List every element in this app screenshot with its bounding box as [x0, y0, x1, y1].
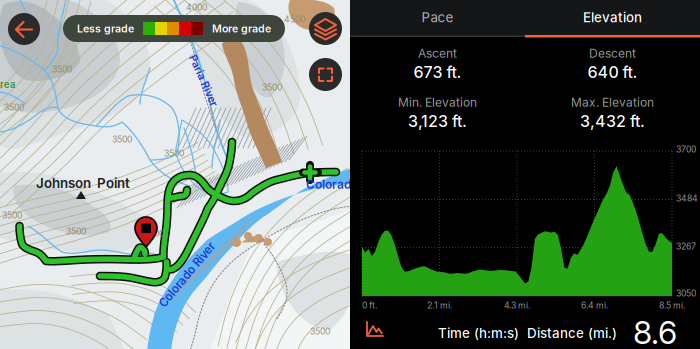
- staticText: 3,123 ft.: [408, 111, 467, 131]
- staticText: rea: [0, 79, 15, 90]
- staticText: Ascent: [418, 46, 457, 60]
- staticText: Less grade: [77, 22, 134, 35]
- staticText: 640 ft.: [587, 62, 637, 82]
- staticText: 3500: [52, 64, 72, 74]
- staticText: 2.1 mi.: [427, 300, 452, 310]
- staticText: 673 ft.: [413, 62, 461, 82]
- staticText: Time (h:m:s): [438, 325, 519, 341]
- button[interactable]: Elevation: [525, 0, 700, 35]
- staticText: Max. Elevation: [571, 95, 654, 109]
- staticText: 3500: [4, 102, 24, 112]
- staticText: Descent: [589, 46, 636, 60]
- staticText: More grade: [212, 22, 271, 35]
- button[interactable]: Pace: [350, 0, 525, 35]
- staticText: Paria River: [176, 74, 231, 87]
- staticText: 3500: [144, 228, 164, 238]
- staticText: Elevation: [583, 9, 642, 25]
- staticText: 3,432 ft.: [580, 111, 645, 131]
- staticText: 4000: [186, 2, 207, 12]
- staticText: Pace: [421, 9, 453, 25]
- staticText: 3050: [676, 288, 696, 298]
- staticText: Colorado River: [147, 268, 227, 282]
- button[interactable]: Map layers: [309, 12, 342, 45]
- staticText: 3500: [112, 134, 132, 144]
- staticText: 3500: [66, 226, 86, 236]
- staticText: 6.4 mi.: [581, 300, 608, 310]
- staticText: Colorado: [306, 177, 358, 191]
- button[interactable]: Full screen: [309, 58, 342, 91]
- staticText: 4.3 mi.: [504, 300, 530, 310]
- staticText: 4500: [284, 14, 305, 24]
- staticText: Min. Elevation: [398, 95, 477, 109]
- staticText: 8.5 mi.: [659, 300, 685, 310]
- staticText: 3500: [262, 82, 282, 92]
- staticText: 3484: [676, 193, 698, 203]
- staticText: Johnson Point: [36, 175, 130, 191]
- staticText: 3500: [310, 326, 330, 336]
- staticText: 3267: [676, 241, 696, 251]
- staticText: 3500: [2, 210, 22, 220]
- staticText: 0 ft.: [362, 300, 377, 310]
- staticText: Distance (mi.): [527, 325, 617, 341]
- button[interactable]: Elevation chart: [358, 314, 392, 345]
- staticText: 3500: [164, 148, 184, 158]
- button[interactable]: Back: [8, 13, 40, 45]
- staticText: 8.6: [633, 313, 677, 349]
- staticText: 3700: [676, 144, 696, 154]
